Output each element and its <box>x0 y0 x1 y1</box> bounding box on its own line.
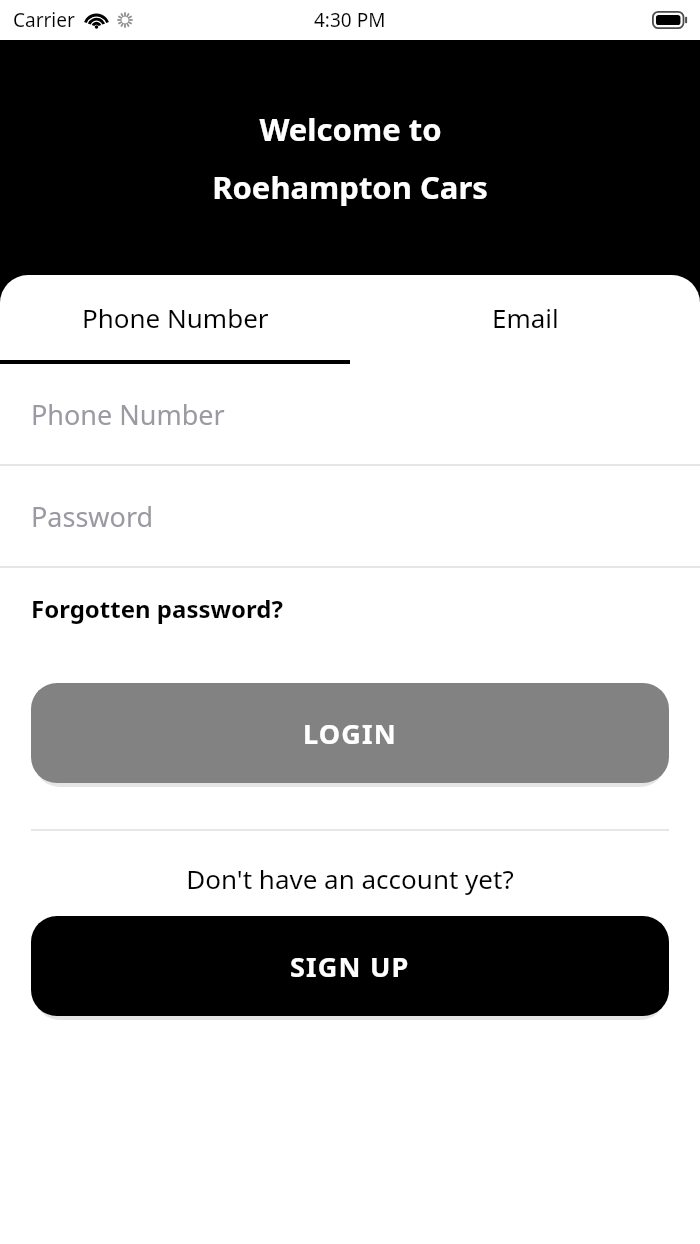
staticText: Welcome to <box>259 108 442 150</box>
staticText: Password <box>31 498 154 535</box>
staticText: Phone Number <box>31 396 225 433</box>
button[interactable]: Forgotten password? <box>0 584 700 633</box>
staticText: Forgotten password? <box>31 592 283 625</box>
button[interactable]: Phone Number <box>0 364 700 464</box>
button[interactable]: Password <box>0 466 700 566</box>
staticText: 4:30 PM <box>314 7 386 33</box>
staticText: Carrier <box>13 7 75 33</box>
staticText: Roehampton Cars <box>212 166 488 208</box>
staticText: LOGIN <box>303 715 397 752</box>
staticText: Email <box>492 300 559 335</box>
staticText: SIGN UP <box>290 948 410 985</box>
button[interactable]: Email <box>350 275 700 360</box>
button[interactable]: Phone Number <box>0 275 350 360</box>
button[interactable]: SIGN UP <box>31 916 669 1016</box>
staticText: Phone Number <box>82 300 269 335</box>
staticText: Don't have an account yet? <box>0 861 700 896</box>
button[interactable]: LOGIN <box>31 683 669 783</box>
